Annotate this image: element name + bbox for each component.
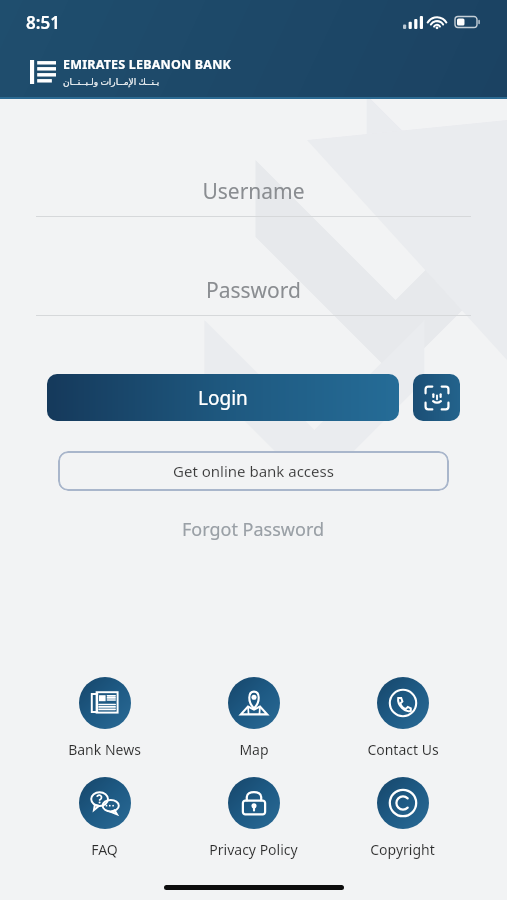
staticText: Copyright [370,840,435,859]
button[interactable]: Face ID login [413,374,460,421]
button[interactable]: FAQ [30,777,179,859]
button[interactable]: Bank News [30,677,179,759]
staticText: Login [198,385,248,411]
button[interactable]: Password [36,273,471,316]
staticText: Forgot Password [182,517,325,542]
button[interactable]: Copyright [328,777,477,859]
staticText: 8:51 [26,11,60,34]
staticText: Contact Us [367,740,439,759]
staticText: Map [239,740,269,759]
staticText: Bank News [68,740,141,759]
staticText: Get online bank access [173,461,334,481]
staticText: بـنــك الإمــارات ولـبــنــان [63,75,160,87]
staticText: FAQ [91,840,118,859]
button[interactable]: Get online bank access [58,451,449,491]
button[interactable]: Forgot Password [172,513,335,546]
staticText: Password [206,276,301,305]
staticText: Privacy Policy [209,840,298,859]
staticText: Username [202,177,305,206]
button[interactable]: Map [179,677,328,759]
button[interactable]: Privacy Policy [179,777,328,859]
button[interactable]: Contact Us [328,677,477,759]
button[interactable]: Username [36,174,471,217]
staticText: EMIRATES LEBANON BANK [63,56,232,73]
button[interactable]: Login [47,374,399,421]
